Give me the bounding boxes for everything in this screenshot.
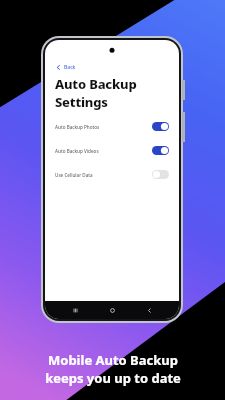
button[interactable]: Back	[54, 62, 78, 73]
staticText: Auto Backup Videos	[55, 148, 99, 154]
staticText: Auto Backup Photos	[55, 124, 100, 130]
button[interactable]: Use Cellular Data	[45, 168, 179, 181]
staticText: Back	[64, 64, 76, 71]
button[interactable]: Home	[105, 303, 119, 317]
button[interactable]: Auto Backup Photos	[45, 120, 179, 133]
staticText: Mobile Auto Backup	[48, 351, 178, 369]
button[interactable]: Switch off	[152, 170, 169, 179]
button[interactable]: Back	[142, 303, 156, 317]
staticText: Use Cellular Data	[55, 172, 93, 178]
button[interactable]: Auto Backup Videos	[45, 144, 179, 157]
button[interactable]: Switch on	[152, 146, 169, 155]
staticText: Auto Backup Settings	[55, 75, 179, 111]
staticText: keeps you up to date	[45, 369, 181, 387]
button[interactable]: Switch on	[152, 122, 169, 131]
button[interactable]: Recents	[68, 303, 82, 317]
